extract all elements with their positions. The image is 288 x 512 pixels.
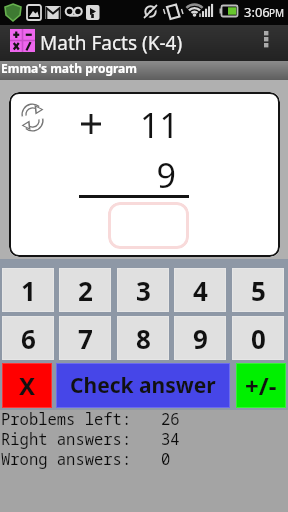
- staticText: Emma's math program: [1, 60, 137, 76]
- staticText: 11: [111, 102, 179, 146]
- staticText: X: [19, 369, 36, 402]
- staticText: 34: [161, 428, 180, 449]
- staticText: Problems left:: [1, 408, 132, 429]
- staticText: 8: [136, 321, 151, 356]
- staticText: 0: [251, 321, 266, 356]
- button[interactable]: 9: [174, 316, 226, 360]
- staticText: PM: [269, 6, 285, 20]
- button[interactable]: 5: [232, 268, 284, 312]
- button[interactable]: 1: [2, 268, 54, 312]
- staticText: 1: [21, 273, 36, 308]
- button[interactable]: +/-: [236, 363, 286, 408]
- staticText: 26: [161, 408, 180, 429]
- staticText: 0: [161, 448, 171, 469]
- button[interactable]: X: [2, 363, 52, 408]
- staticText: Wrong answers:: [1, 448, 132, 469]
- button[interactable]: [108, 202, 189, 249]
- button[interactable]: 4: [174, 268, 226, 312]
- button[interactable]: [256, 25, 276, 61]
- button[interactable]: 7: [59, 316, 111, 360]
- staticText: 9: [193, 321, 208, 356]
- button[interactable]: Emma's math program: [0, 61, 288, 80]
- staticText: 9: [108, 152, 176, 196]
- button[interactable]: Check answer: [56, 363, 230, 408]
- staticText: 5: [251, 273, 266, 308]
- staticText: 7: [78, 321, 93, 356]
- button[interactable]: 8: [117, 316, 169, 360]
- staticText: 6: [21, 321, 36, 356]
- button[interactable]: [10, 29, 35, 52]
- staticText: Right answers:: [1, 428, 132, 449]
- staticText: Math Facts (K-4): [40, 30, 183, 56]
- staticText: +/-: [245, 369, 277, 402]
- button[interactable]: 0: [232, 316, 284, 360]
- button[interactable]: 2: [59, 268, 111, 312]
- button[interactable]: 6: [2, 316, 54, 360]
- staticText: Check answer: [70, 371, 216, 400]
- staticText: 3:06: [244, 3, 270, 21]
- staticText: 3: [136, 273, 151, 308]
- button[interactable]: 3: [117, 268, 169, 312]
- staticText: 4: [193, 273, 208, 308]
- button[interactable]: [20, 103, 46, 133]
- staticText: 2: [78, 273, 93, 308]
